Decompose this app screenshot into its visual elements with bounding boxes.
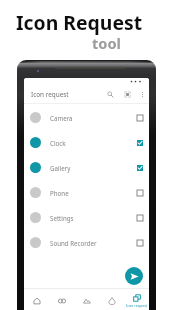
button[interactable]: Apply: [99, 289, 124, 310]
button[interactable]: Camera: [24, 105, 149, 130]
button[interactable]: Settings: [24, 205, 149, 230]
staticText: Phone: [50, 189, 69, 197]
staticText: Icon request: [126, 303, 148, 308]
staticText: Gallery: [50, 164, 71, 172]
button[interactable]: Sound Recorder: [24, 230, 149, 255]
button[interactable]: More options: [137, 89, 148, 100]
staticText: Camera: [50, 114, 73, 122]
button[interactable]: Send request: [125, 267, 143, 285]
staticText: Icon Request: [16, 9, 143, 35]
button[interactable]: Phone: [24, 180, 149, 205]
staticText: Clock: [50, 139, 66, 147]
button[interactable]: Search: [105, 89, 116, 100]
button[interactable]: Clock: [24, 130, 149, 155]
button[interactable]: Icons: [49, 289, 74, 310]
button[interactable]: Select all: [122, 89, 133, 100]
button[interactable]: Home: [24, 289, 49, 310]
staticText: Settings: [50, 214, 74, 222]
staticText: Sound Recorder: [50, 239, 97, 247]
button[interactable]: Gallery: [24, 155, 149, 180]
staticText: Icon request: [31, 90, 69, 99]
button[interactable]: Wallpapers: [74, 289, 99, 310]
staticText: tool: [92, 33, 121, 53]
button[interactable]: Icon request: [124, 289, 149, 310]
